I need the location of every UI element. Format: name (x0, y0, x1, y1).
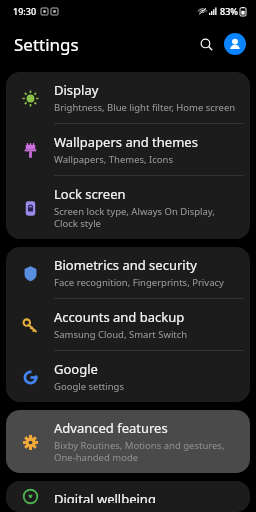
button[interactable]: Account (224, 33, 246, 55)
staticText: Bixby Routines, Motions and gestures, On… (54, 439, 225, 464)
button[interactable]: Wallpapers and themes (6, 124, 250, 175)
button[interactable]: Lock screen (6, 176, 250, 239)
staticText: Biometrics and security (54, 256, 198, 274)
staticText: Advanced features (54, 419, 168, 437)
button[interactable]: Digital wellbeing (6, 481, 250, 512)
button[interactable]: Accounts and backup (6, 299, 250, 350)
staticText: Wallpapers and themes (54, 133, 198, 151)
button[interactable]: Google (6, 351, 250, 402)
staticText: Face recognition, Fingerprints, Privacy (54, 276, 224, 289)
staticText: Accounts and backup (54, 308, 185, 326)
staticText: Settings (14, 33, 79, 56)
staticText: 19:30 (13, 5, 37, 17)
staticText: Brightness, Blue light filter, Home scre… (54, 101, 236, 114)
staticText: Screen lock type, Always On Display, Clo… (54, 205, 240, 230)
button[interactable]: Advanced features (6, 410, 250, 473)
staticText: Digital wellbeing (54, 490, 156, 503)
staticText: 83% (220, 5, 238, 17)
button[interactable]: Search (193, 31, 219, 57)
button[interactable]: Biometrics and security (6, 247, 250, 298)
staticText: Google (54, 360, 98, 378)
staticText: Lock screen (54, 185, 126, 203)
staticText: Display (54, 81, 99, 99)
staticText: Google settings (54, 380, 125, 393)
button[interactable]: Display (6, 72, 250, 123)
staticText: Samsung Cloud, Smart Switch (54, 328, 188, 341)
staticText: Wallpapers, Themes, Icons (54, 153, 174, 166)
